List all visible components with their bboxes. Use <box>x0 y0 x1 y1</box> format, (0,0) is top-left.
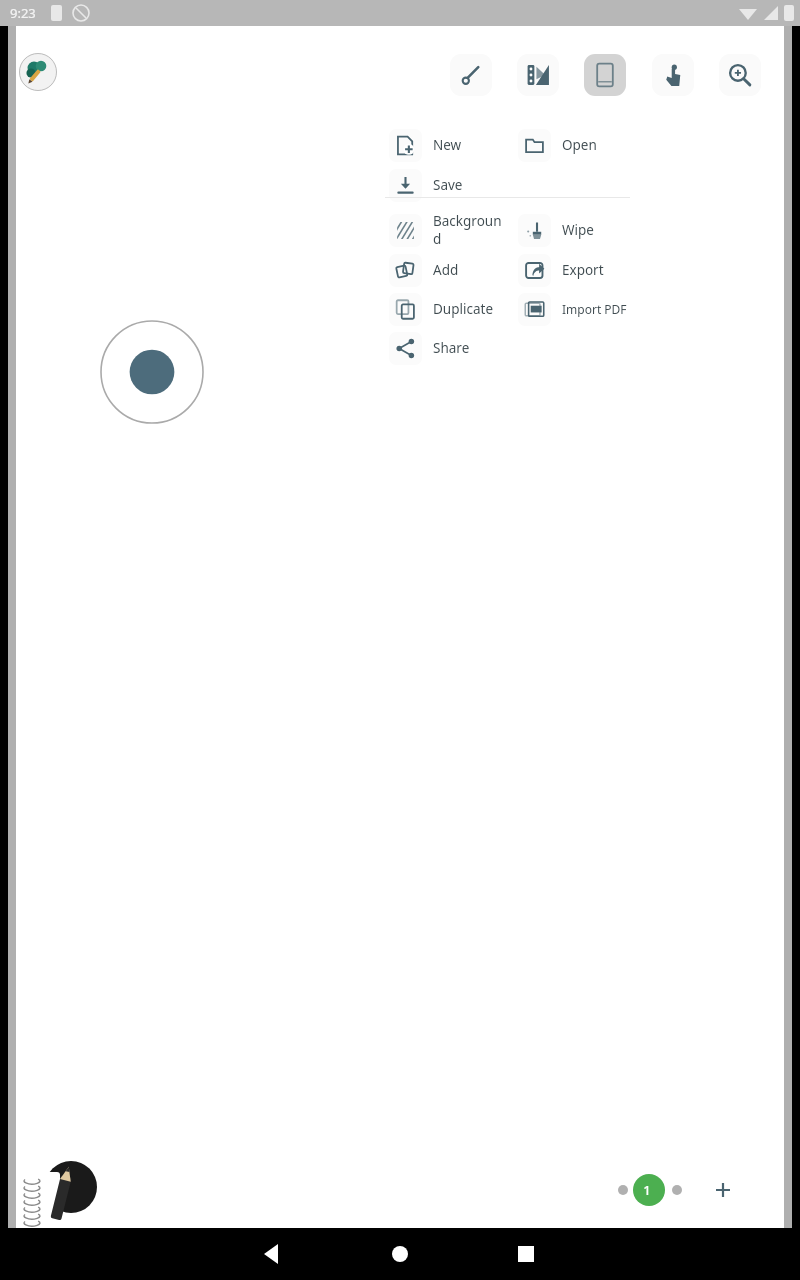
button[interactable]: Zoom <box>719 54 761 96</box>
staticText: Import PDF <box>562 301 627 317</box>
button[interactable]: New <box>389 127 509 163</box>
button[interactable]: Palette <box>517 54 559 96</box>
staticText: Background <box>433 212 509 248</box>
button[interactable]: Add page <box>705 1172 741 1208</box>
staticText: Wipe <box>562 221 594 239</box>
staticText: Share <box>433 339 470 357</box>
staticText: Open <box>562 136 597 154</box>
staticText: Save <box>433 176 463 194</box>
button[interactable]: Duplicate <box>389 291 509 327</box>
staticText: 1 <box>643 1181 651 1199</box>
staticText: Duplicate <box>433 300 494 318</box>
button[interactable]: Add <box>389 252 509 288</box>
staticText: Add <box>433 261 459 279</box>
staticText: New <box>433 136 462 154</box>
button[interactable]: App menu <box>17 51 59 93</box>
button[interactable]: Share <box>389 330 509 366</box>
button[interactable]: Page <box>584 54 626 96</box>
button[interactable]: Import PDF <box>518 291 646 327</box>
staticText: 9:23 <box>10 4 36 22</box>
button[interactable]: Open <box>518 127 638 163</box>
button[interactable]: Background <box>389 212 509 248</box>
button[interactable]: Wipe <box>518 212 638 248</box>
button[interactable]: Export <box>518 252 638 288</box>
button[interactable]: Touch <box>652 54 694 96</box>
staticText: Export <box>562 261 604 279</box>
button[interactable]: Brush <box>450 54 492 96</box>
button[interactable]: Save <box>389 167 509 203</box>
